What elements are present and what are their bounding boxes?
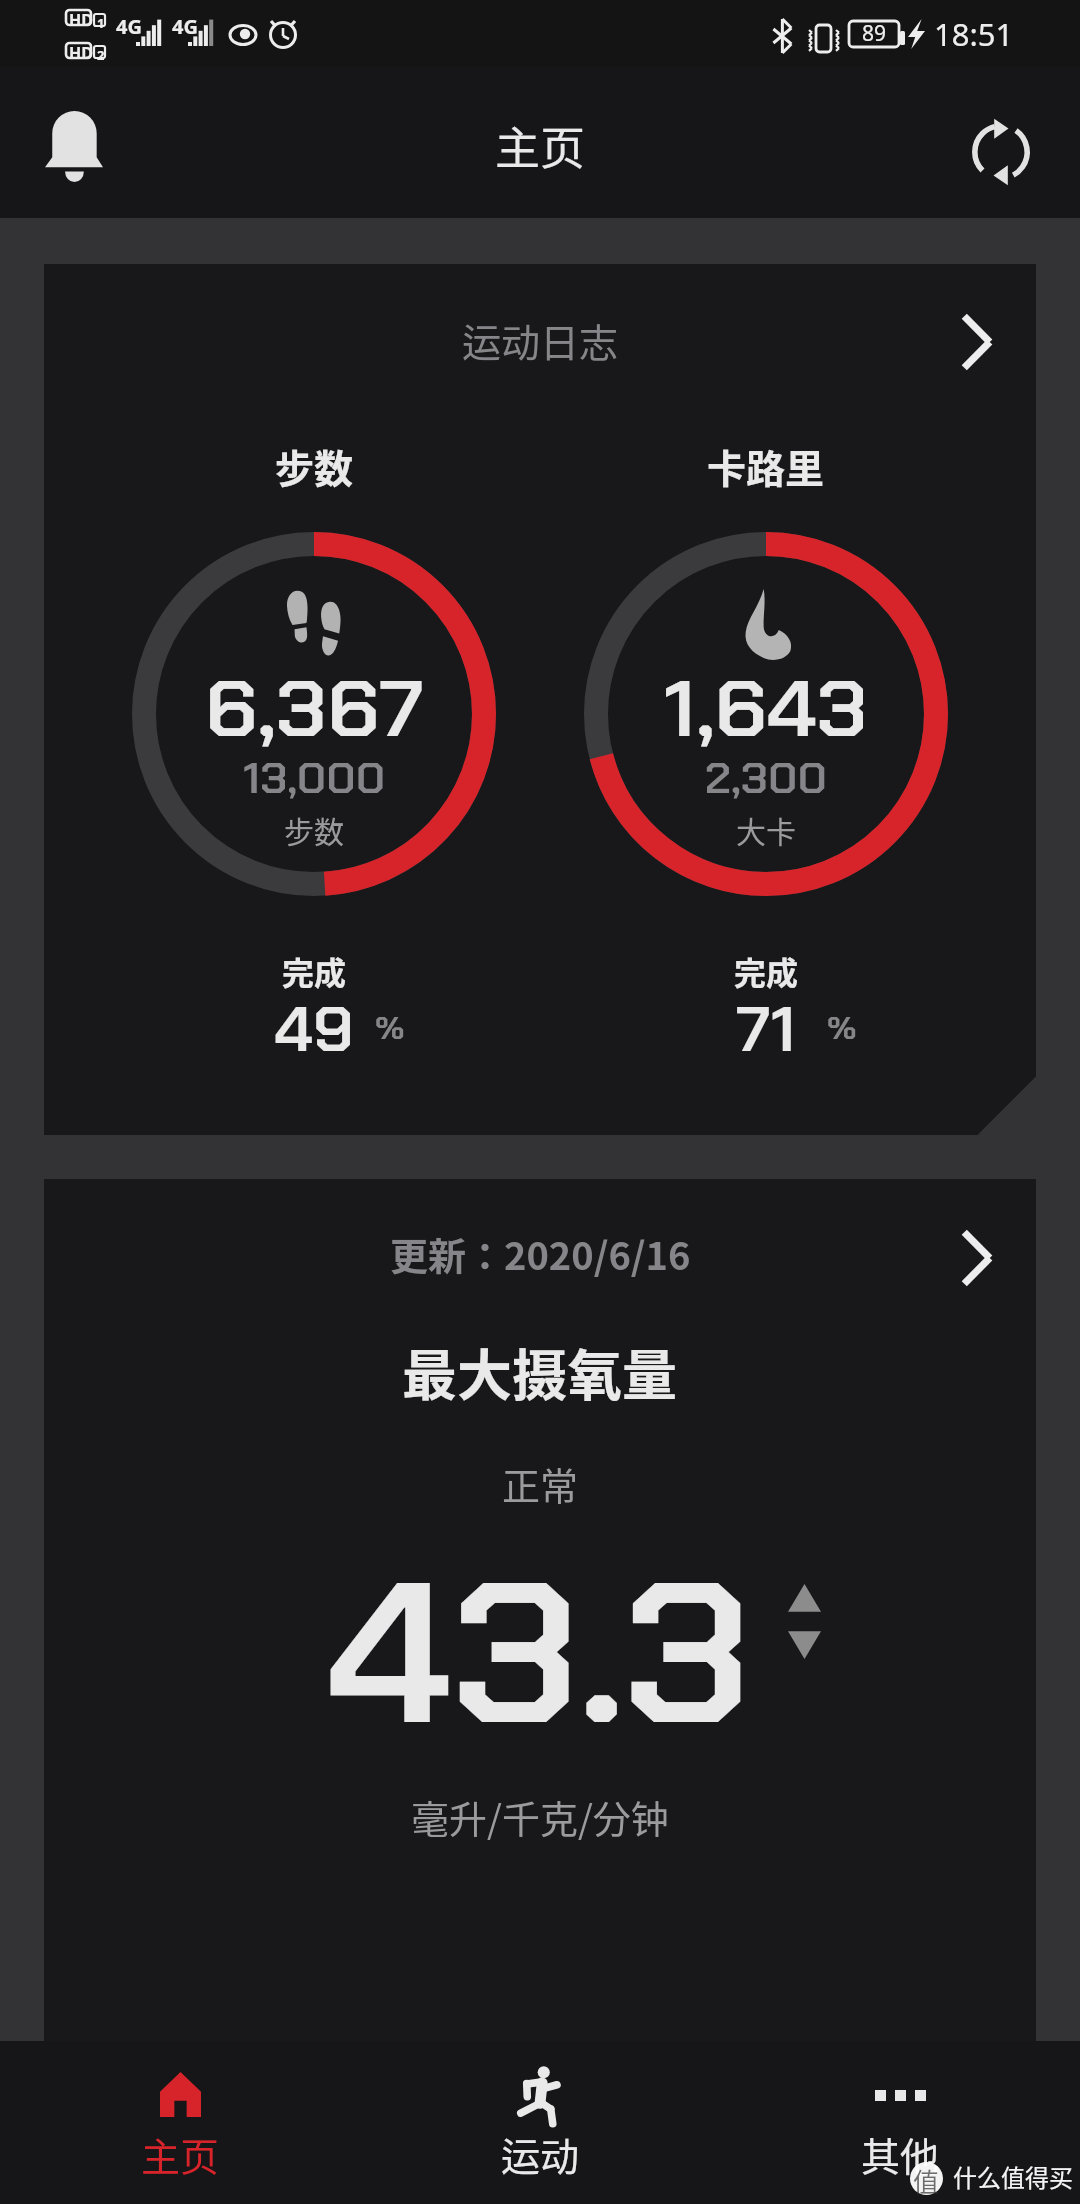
staticText: 什么值得买 bbox=[953, 2159, 1073, 2194]
staticText: 71 bbox=[736, 990, 796, 1069]
staticText: HD bbox=[69, 9, 93, 31]
button[interactable]: 运动日志 bbox=[44, 264, 1036, 1135]
staticText: 正常 bbox=[502, 1456, 579, 1511]
staticText: 4G bbox=[172, 13, 198, 40]
staticText: 2 bbox=[97, 46, 105, 64]
button[interactable]: Open activity log bbox=[934, 299, 1020, 385]
staticText: 主页 bbox=[141, 2126, 220, 2182]
staticText: % bbox=[375, 1007, 405, 1049]
button[interactable]: Open VO2 max details bbox=[934, 1215, 1020, 1301]
staticText: 运动日志 bbox=[462, 312, 619, 368]
staticText: 18:51 bbox=[934, 13, 1014, 55]
staticText: 完成 bbox=[282, 948, 347, 994]
staticText: % bbox=[827, 1007, 857, 1049]
staticText: 主页 bbox=[495, 113, 586, 178]
button[interactable]: Refresh bbox=[954, 105, 1048, 199]
button[interactable]: 运动 bbox=[360, 2041, 720, 2204]
staticText: HD bbox=[69, 42, 93, 64]
button[interactable]: Notifications bbox=[18, 87, 130, 199]
staticText: 更新：2020/6/16 bbox=[390, 1226, 691, 1281]
staticText: 1,643 bbox=[663, 658, 868, 761]
staticText: 毫升/千克/分钟 bbox=[411, 1789, 669, 1844]
staticText: 2,300 bbox=[705, 751, 827, 806]
button[interactable]: 主页 bbox=[0, 2041, 360, 2204]
staticText: 43.3 bbox=[327, 1525, 753, 1784]
staticText: 卡路里 bbox=[707, 438, 825, 494]
staticText: 6,367 bbox=[205, 658, 424, 761]
staticText: 完成 bbox=[734, 948, 799, 994]
staticText: 值 bbox=[913, 2162, 940, 2195]
button[interactable]: 其他 bbox=[720, 2041, 1080, 2204]
staticText: 89 bbox=[862, 19, 887, 48]
staticText: 运动 bbox=[501, 2126, 580, 2182]
staticText: 49 bbox=[275, 990, 354, 1069]
staticText: 4G bbox=[116, 13, 142, 40]
staticText: 大卡 bbox=[736, 808, 796, 851]
staticText: 其他 bbox=[861, 2126, 940, 2182]
staticText: 1 bbox=[97, 14, 105, 32]
staticText: 13,000 bbox=[243, 751, 386, 806]
staticText: 最大摄氧量 bbox=[402, 1331, 678, 1411]
staticText: 步数 bbox=[275, 438, 354, 494]
button[interactable]: 更新：2020/6/16 bbox=[44, 1179, 1036, 2041]
staticText: 步数 bbox=[284, 808, 344, 851]
